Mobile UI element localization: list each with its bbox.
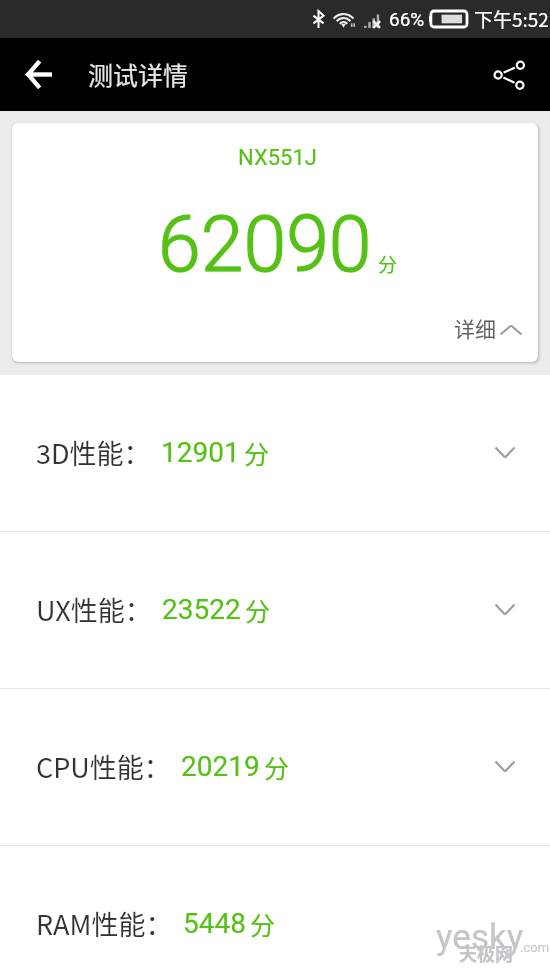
staticText: 62090: [158, 200, 372, 290]
staticText: CPU性能：: [36, 747, 171, 786]
button[interactable]: RAM性能：: [0, 846, 550, 977]
staticText: 5448: [183, 907, 246, 940]
staticText: 天极网: [459, 940, 513, 966]
staticText: UX性能：: [36, 590, 152, 629]
staticText: 分: [244, 435, 270, 471]
button[interactable]: NX551J: [12, 123, 538, 362]
button[interactable]: CPU性能：: [0, 689, 550, 845]
staticText: 62090: [158, 200, 372, 290]
staticText: 分: [245, 592, 271, 628]
staticText: 分: [264, 749, 290, 785]
staticText: 测试详情: [88, 56, 189, 92]
staticText: NX551J: [238, 145, 317, 171]
staticText: 分: [250, 906, 276, 942]
button[interactable]: Back: [14, 50, 63, 99]
staticText: 20219: [181, 750, 260, 783]
staticText: 下午5:52: [474, 5, 549, 33]
staticText: 66%: [389, 8, 425, 30]
button[interactable]: UX性能：: [0, 532, 550, 688]
button[interactable]: Share: [485, 51, 533, 99]
staticText: 12901: [161, 436, 240, 469]
staticText: RAM性能：: [36, 904, 173, 943]
staticText: 23522: [162, 593, 241, 626]
staticText: 分: [378, 250, 398, 278]
staticText: 详细: [454, 313, 496, 343]
staticText: yesky: [436, 917, 524, 958]
staticText: .com: [520, 940, 550, 955]
staticText: 3D性能：: [36, 433, 151, 472]
button[interactable]: 3D性能：: [0, 375, 550, 531]
button[interactable]: 详细: [454, 313, 522, 343]
